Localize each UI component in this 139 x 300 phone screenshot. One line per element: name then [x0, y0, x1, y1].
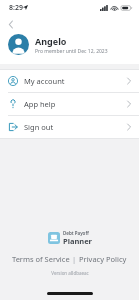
- staticText: Privacy Policy: [79, 254, 127, 264]
- staticText: 8:29: [9, 3, 23, 13]
- button[interactable]: Angelo: [0, 32, 139, 64]
- staticText: Pro member until Dec 12, 2023: [35, 48, 108, 55]
- staticText: Planner: [63, 236, 92, 246]
- staticText: Angelo: [35, 35, 67, 47]
- button[interactable]: Privacy Policy: [79, 254, 127, 264]
- button[interactable]: Back: [3, 16, 19, 32]
- button[interactable]: Terms of Service: [12, 254, 70, 264]
- staticText: App help: [24, 99, 127, 109]
- button[interactable]: Sign out: [0, 116, 139, 138]
- staticText: |: [70, 254, 79, 264]
- staticText: My account: [24, 76, 127, 86]
- staticText: Terms of Service: [12, 254, 70, 264]
- button[interactable]: My account: [0, 70, 139, 92]
- button[interactable]: App help: [0, 93, 139, 115]
- staticText: Version a8dbaeac: [51, 270, 89, 276]
- staticText: Sign out: [24, 122, 127, 132]
- staticText: Debt Payoff: [63, 230, 89, 236]
